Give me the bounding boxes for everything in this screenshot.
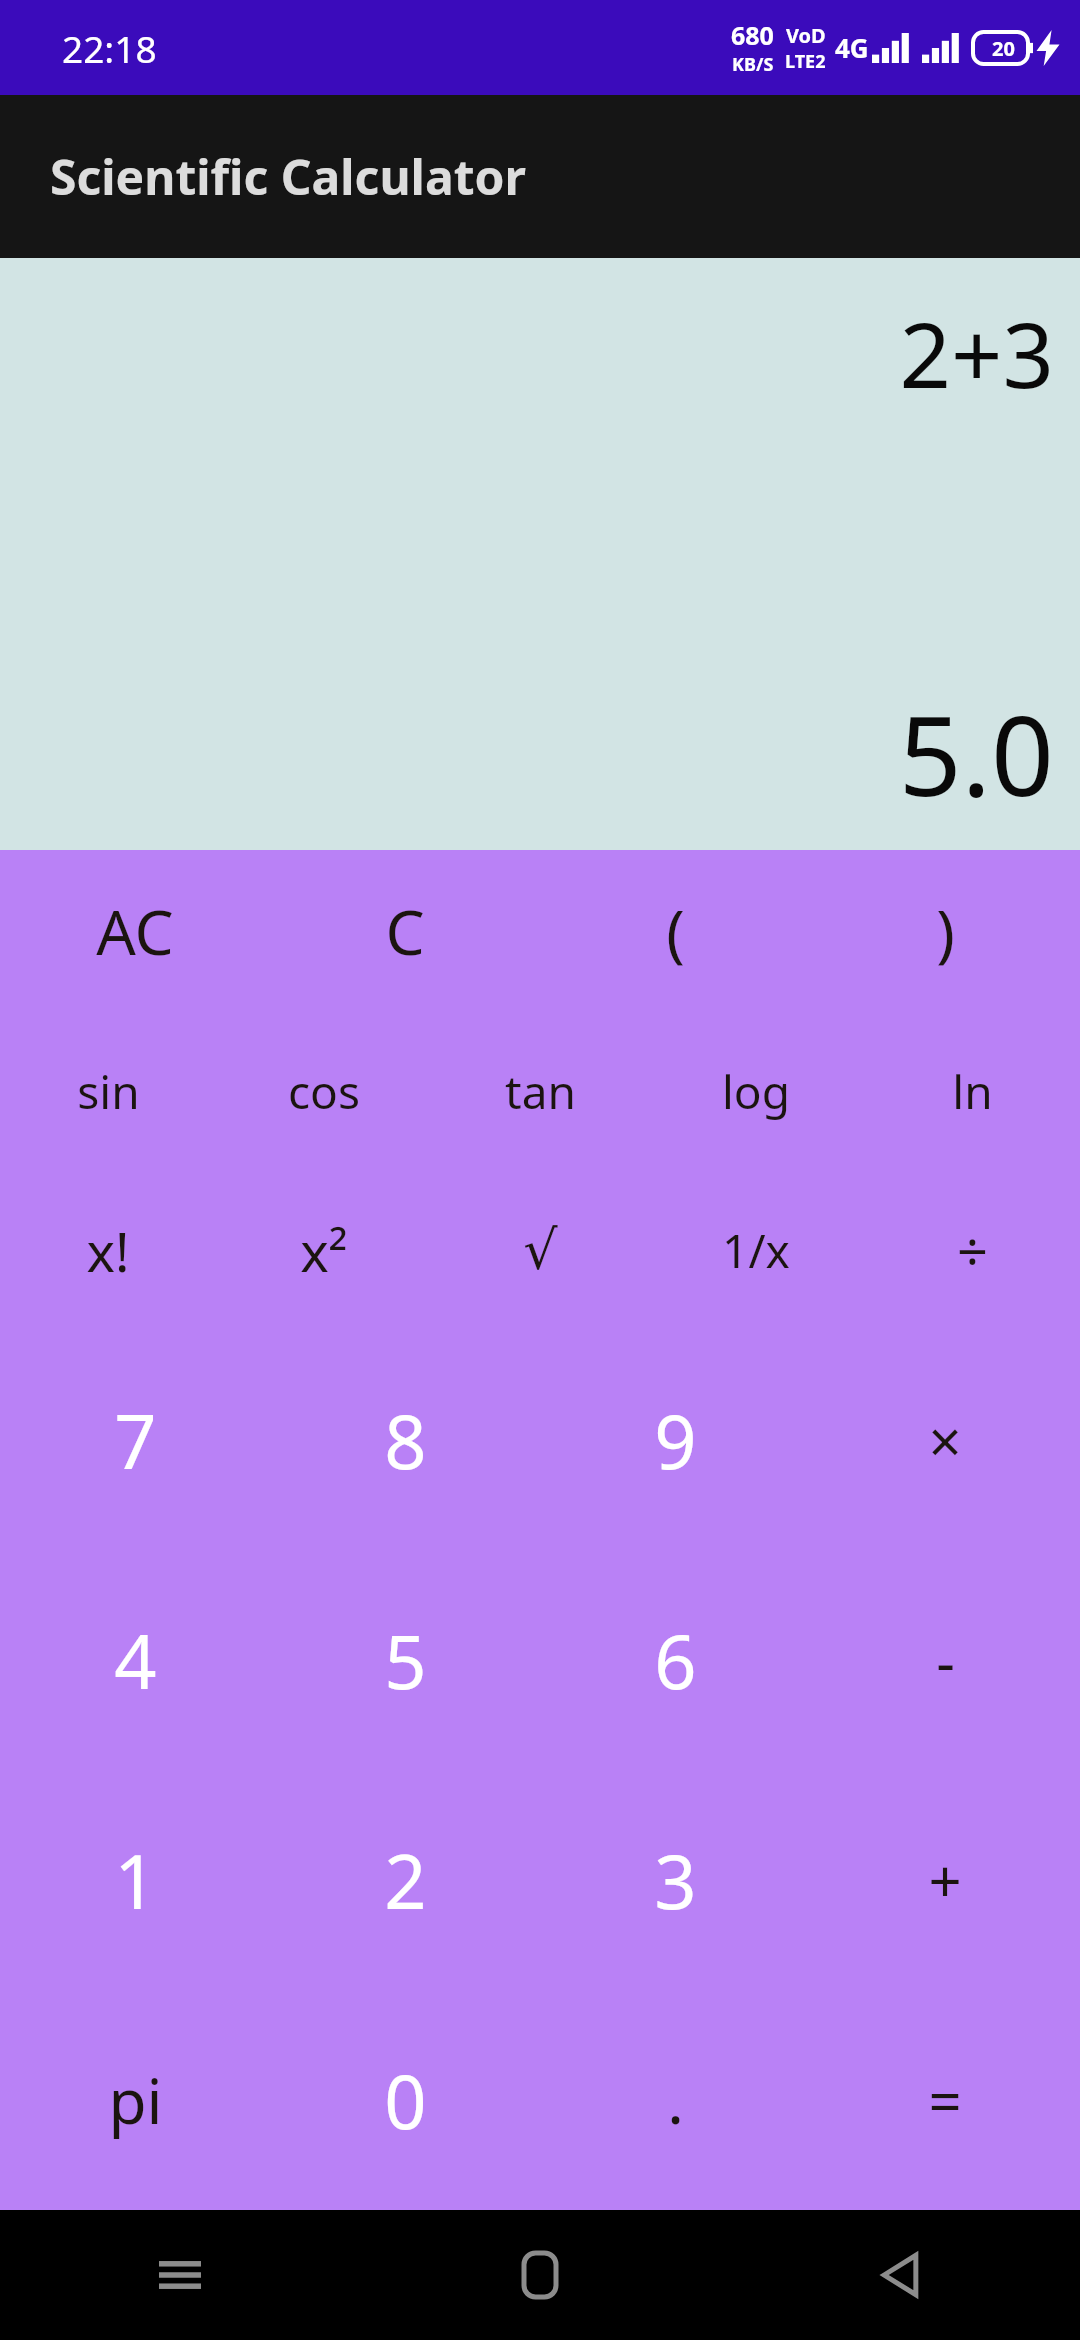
staticText: 680: [731, 18, 774, 52]
button[interactable]: C: [270, 850, 540, 1012]
staticText: ): [936, 889, 955, 973]
button[interactable]: sin: [0, 1012, 216, 1171]
staticText: x!: [86, 1214, 130, 1288]
button[interactable]: 6: [540, 1550, 810, 1770]
staticText: 6: [654, 1610, 697, 1711]
staticText: pi: [108, 2058, 163, 2142]
staticText: 5.0: [898, 678, 1054, 828]
button[interactable]: 9: [540, 1330, 810, 1550]
staticText: 20: [992, 35, 1015, 62]
button[interactable]: ln: [864, 1012, 1080, 1171]
button[interactable]: +: [810, 1770, 1080, 1990]
staticText: ×: [928, 1401, 962, 1480]
button[interactable]: ): [810, 850, 1080, 1012]
button[interactable]: pi: [0, 1990, 270, 2210]
staticText: 0: [384, 2050, 427, 2151]
button[interactable]: .: [540, 1990, 810, 2210]
button[interactable]: AC: [0, 850, 270, 1012]
button[interactable]: Recent apps: [0, 2210, 360, 2340]
staticText: 7: [114, 1390, 157, 1491]
button[interactable]: 7: [0, 1330, 270, 1550]
staticText: cos: [288, 1060, 360, 1123]
staticText: 1: [114, 1830, 157, 1931]
button[interactable]: √: [432, 1171, 648, 1330]
staticText: VoD: [786, 22, 826, 49]
button[interactable]: -: [810, 1550, 1080, 1770]
button[interactable]: 2: [270, 1770, 540, 1990]
button[interactable]: (: [540, 850, 810, 1012]
button[interactable]: 3: [540, 1770, 810, 1990]
staticText: +: [928, 1841, 962, 1920]
button[interactable]: Home: [360, 2210, 720, 2340]
staticText: 22:18: [62, 23, 157, 73]
staticText: KB/S: [732, 52, 774, 77]
staticText: 2: [384, 1830, 427, 1931]
button[interactable]: 0: [270, 1990, 540, 2210]
staticText: 3: [654, 1830, 697, 1931]
staticText: .: [667, 2058, 684, 2142]
staticText: Scientific Calculator: [50, 144, 526, 209]
button[interactable]: Back: [720, 2210, 1080, 2340]
staticText: log: [722, 1060, 790, 1123]
staticText: -: [936, 1621, 955, 1700]
staticText: =: [928, 2061, 962, 2140]
button[interactable]: x!: [0, 1171, 216, 1330]
staticText: tan: [505, 1060, 576, 1123]
staticText: 2+3: [899, 292, 1054, 415]
staticText: 9: [654, 1390, 697, 1491]
staticText: C: [385, 889, 425, 973]
button[interactable]: ÷: [864, 1171, 1080, 1330]
button[interactable]: 4: [0, 1550, 270, 1770]
button[interactable]: tan: [432, 1012, 648, 1171]
button[interactable]: 1/x: [648, 1171, 864, 1330]
staticText: sin: [77, 1060, 140, 1123]
staticText: 5: [384, 1610, 427, 1711]
button[interactable]: 5: [270, 1550, 540, 1770]
button[interactable]: 8: [270, 1330, 540, 1550]
staticText: ln: [952, 1060, 993, 1123]
staticText: ÷: [957, 1214, 988, 1288]
staticText: LTE2: [785, 49, 826, 74]
staticText: 1/x: [722, 1219, 790, 1282]
button[interactable]: =: [810, 1990, 1080, 2210]
button[interactable]: x²: [216, 1171, 432, 1330]
staticText: (: [666, 889, 685, 973]
button[interactable]: log: [648, 1012, 864, 1171]
staticText: 4: [114, 1610, 157, 1711]
staticText: AC: [96, 889, 174, 973]
button[interactable]: 1: [0, 1770, 270, 1990]
staticText: 8: [384, 1390, 427, 1491]
staticText: 4G: [835, 30, 869, 65]
button[interactable]: ×: [810, 1330, 1080, 1550]
button[interactable]: cos: [216, 1012, 432, 1171]
staticText: √: [523, 1219, 558, 1282]
staticText: x²: [300, 1214, 348, 1288]
